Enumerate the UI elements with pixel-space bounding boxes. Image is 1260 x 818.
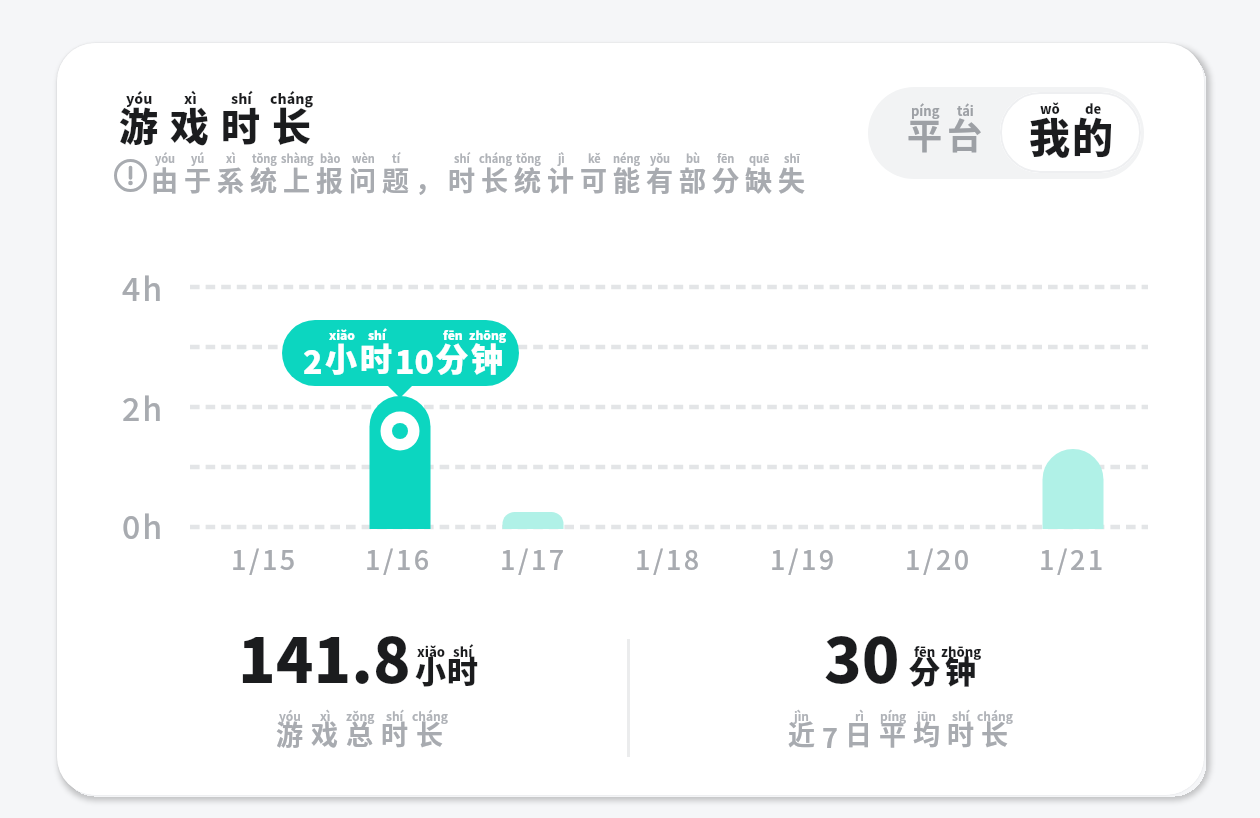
staticText: 的 <box>1072 105 1113 164</box>
staticText: 能 <box>613 160 640 199</box>
staticText: 均 <box>913 714 940 753</box>
staticText: 问 <box>349 160 376 199</box>
staticText: 长 <box>481 160 508 199</box>
staticText: 141.8 <box>238 611 411 701</box>
staticText: jìn <box>794 707 810 724</box>
staticText: 时 <box>447 647 478 692</box>
staticText: 总 <box>346 714 373 753</box>
staticText: 台 <box>947 108 983 159</box>
staticText: xì <box>320 707 331 724</box>
staticText: shí <box>454 150 470 166</box>
staticText: shàng <box>281 150 314 166</box>
staticText: 系 <box>217 160 244 199</box>
staticText: rì <box>855 707 864 724</box>
staticText: 日 <box>845 714 872 753</box>
staticText: xiǎo <box>329 326 355 343</box>
staticText: shī <box>784 150 800 166</box>
staticText: jì <box>558 150 565 166</box>
staticText: fēn <box>717 150 735 166</box>
staticText: 时 <box>360 334 393 380</box>
staticText: zhōng <box>941 642 982 661</box>
staticText: tǒng <box>516 150 541 166</box>
staticText: 分 <box>436 334 469 380</box>
staticText: 部 <box>679 160 706 199</box>
staticText: 上 <box>283 160 310 199</box>
staticText: 10 <box>395 337 434 383</box>
staticText: 4h <box>122 264 165 310</box>
staticText: 游 <box>276 714 303 753</box>
staticText: cháng <box>977 707 1013 724</box>
staticText: shí <box>386 707 404 724</box>
button[interactable] <box>1000 92 1141 173</box>
staticText: shí <box>368 326 386 343</box>
staticText: shí <box>231 88 252 108</box>
staticText: 游 <box>119 96 159 152</box>
staticText: tǒng <box>252 150 277 166</box>
staticText: píng <box>911 101 940 120</box>
staticText: de <box>1085 99 1102 118</box>
staticText: xiǎo <box>417 642 446 661</box>
staticText: 于 <box>184 160 211 199</box>
staticText: wǒ <box>1040 99 1060 118</box>
staticText: xì <box>226 150 236 166</box>
staticText: 题 <box>382 160 409 199</box>
staticText: 缺 <box>745 160 772 199</box>
staticText: jūn <box>917 707 937 724</box>
staticText: 1/20 <box>905 539 972 578</box>
staticText: 我 <box>1029 105 1070 164</box>
staticText: 平 <box>879 714 906 753</box>
staticText: 戏 <box>170 96 210 152</box>
staticText: 有 <box>646 160 673 199</box>
staticText: 0h <box>122 502 165 548</box>
staticText: 小 <box>325 334 358 380</box>
staticText: 1/19 <box>770 539 837 578</box>
staticText: shí <box>453 642 473 661</box>
button[interactable] <box>868 87 1006 179</box>
staticText: yú <box>191 150 205 166</box>
staticText: 长 <box>981 714 1008 753</box>
staticText: fēn <box>914 642 936 661</box>
staticText: cháng <box>479 150 512 166</box>
staticText: quē <box>749 150 770 166</box>
staticText: píng <box>880 707 907 724</box>
staticText: cháng <box>270 88 314 108</box>
staticText: yǒu <box>650 150 671 166</box>
staticText: ， <box>415 160 442 199</box>
staticText: bù <box>686 150 701 166</box>
staticText: 时 <box>947 714 974 753</box>
staticText: 7 <box>822 717 838 756</box>
staticText: 1/15 <box>231 539 298 578</box>
staticText: 时 <box>381 714 408 753</box>
staticText: yóu <box>126 88 153 108</box>
staticText: 报 <box>316 160 343 199</box>
staticText: 近 <box>788 714 815 753</box>
staticText: 计 <box>547 160 574 199</box>
staticText: kě <box>588 150 601 166</box>
staticText: 1/21 <box>1039 539 1106 578</box>
staticText: 1/16 <box>365 539 432 578</box>
staticText: 统 <box>514 160 541 199</box>
staticText: 30 <box>824 611 900 701</box>
staticText: yóu <box>279 707 301 724</box>
staticText: 戏 <box>311 714 338 753</box>
staticText: 2 <box>303 337 323 383</box>
staticText: 由 <box>151 160 178 199</box>
staticText: 分 <box>712 160 739 199</box>
staticText: yóu <box>155 150 176 166</box>
staticText: 长 <box>416 714 443 753</box>
staticText: shí <box>952 707 970 724</box>
staticText: 1/17 <box>500 539 567 578</box>
staticText: fēn <box>443 326 463 343</box>
staticText: néng <box>613 150 641 166</box>
staticText: 分 <box>909 647 940 692</box>
staticText: tí <box>392 150 400 166</box>
staticText: 长 <box>272 96 312 152</box>
staticText: 时 <box>448 160 475 199</box>
staticText: cháng <box>412 707 448 724</box>
staticText: xì <box>184 88 197 108</box>
staticText: 可 <box>580 160 607 199</box>
staticText: zǒng <box>346 707 375 724</box>
staticText: 钟 <box>471 334 504 380</box>
staticText: 平 <box>907 108 943 159</box>
staticText: zhōng <box>469 326 507 343</box>
